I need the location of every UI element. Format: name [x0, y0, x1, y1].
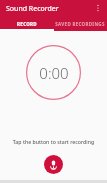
button[interactable]: More options — [91, 1, 105, 15]
staticText: Tap the button to start recording — [0, 138, 107, 145]
staticText: SAVED RECORDINGS — [55, 21, 105, 27]
button[interactable]: Start recording — [44, 155, 63, 174]
staticText: RECORD — [17, 21, 37, 27]
staticText: 0:00 — [39, 63, 69, 83]
button[interactable]: RECORD — [0, 17, 53, 31]
button[interactable]: SAVED RECORDINGS — [53, 17, 107, 31]
staticText: Sound Recorder — [6, 4, 59, 14]
